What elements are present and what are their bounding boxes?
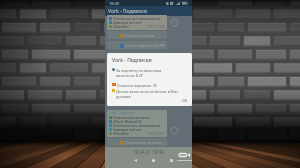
staticText: Отключить все уведомления xyxy=(113,123,161,127)
staticText: Vork - Подписки xyxy=(109,111,134,115)
button[interactable]: Заказали за 6 лет xyxy=(109,127,142,131)
button[interactable]: Подписаться на канал xyxy=(109,115,150,119)
staticText: Заказали за 6 лет xyxy=(113,20,142,24)
staticText: @VorkBot xyxy=(113,131,129,135)
other: Loading xyxy=(170,126,179,135)
button[interactable]: Отключить все уведомления xyxy=(109,16,161,20)
staticText: 19.04.21 18:49 xyxy=(147,25,165,29)
staticText: 19.04.21 18:49 xyxy=(133,149,164,155)
button[interactable]: Recents xyxy=(168,157,175,164)
button[interactable]: Home xyxy=(150,157,157,164)
staticText: Осталось подписок: 35 xyxy=(117,83,157,88)
button[interactable]: Vork - Подписки xyxy=(107,110,167,137)
button[interactable]: Back xyxy=(132,157,139,164)
staticText: Vork - Подписки xyxy=(108,8,147,15)
staticText: @Vork_MarketQQ xyxy=(113,119,142,123)
button[interactable]: Заказали за 6 лет xyxy=(109,20,142,24)
staticText: @VorkBot xyxy=(113,24,129,28)
button[interactable]: Отключить все уведомления xyxy=(109,123,161,127)
staticText: 5 MEGAPIXEL xyxy=(177,158,192,161)
staticText: Vork - Подписки xyxy=(112,57,152,64)
button[interactable]: @VorkBot xyxy=(109,24,129,28)
button[interactable]: Vork - Подписки xyxy=(105,6,192,16)
staticText: 19.04.21 18:49 xyxy=(147,132,165,136)
button[interactable]: Подписаться на канал xyxy=(107,138,167,146)
button[interactable]: @Vork_MarketQQ xyxy=(109,119,142,123)
button[interactable]: OK xyxy=(182,98,187,103)
button[interactable]: Вывести средства xyxy=(107,31,167,39)
staticText: Деньги зачислены на баланс в Bots ручкам… xyxy=(116,89,179,99)
button[interactable]: Баланс подписки 40,79Р xyxy=(107,41,167,49)
staticText: Подписаться на канал xyxy=(113,115,150,119)
staticText: Подписаться на канал xyxy=(125,140,162,145)
staticText: OK xyxy=(182,98,187,103)
other: Loading xyxy=(170,18,179,27)
staticText: Баланс подписки 40,79Р xyxy=(125,43,165,48)
button[interactable]: Отключить все уведомления xyxy=(107,15,167,30)
button[interactable]: @VorkBot xyxy=(109,131,129,135)
staticText: Заказали за 6 лет xyxy=(113,127,142,131)
staticText: 18:49 xyxy=(109,1,120,6)
staticText: Вывести средства xyxy=(125,33,155,38)
staticText: Отключить все уведомления xyxy=(113,16,161,20)
staticText: За подписку на канал вам начислено 8.2Р xyxy=(116,68,162,78)
